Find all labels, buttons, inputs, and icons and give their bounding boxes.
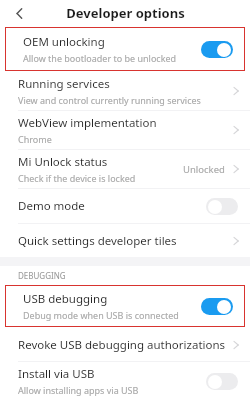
button[interactable]: Toggle off	[206, 373, 238, 390]
staticText: Mi Unlock status	[18, 154, 108, 170]
button[interactable]: USB debugging	[5, 285, 245, 327]
staticText: Developer options	[66, 4, 185, 22]
staticText: Revoke USB debugging authorizations	[18, 337, 226, 353]
button[interactable]: Quick settings developer tiles	[0, 224, 250, 257]
button[interactable]: Revoke USB debugging authorizations	[0, 328, 250, 361]
button[interactable]: Toggle on	[201, 298, 233, 315]
staticText: Check if the device is locked	[18, 172, 136, 184]
button[interactable]: Toggle off	[206, 198, 238, 215]
button[interactable]: WebView implementation	[0, 111, 250, 149]
staticText: Demo mode	[18, 198, 85, 214]
staticText: Running services	[18, 76, 110, 92]
button[interactable]: OEM unlocking	[5, 27, 245, 71]
staticText: Debug mode when USB is connected	[23, 309, 179, 321]
staticText: Install via USB	[18, 366, 95, 382]
button[interactable]: Toggle on	[201, 41, 233, 58]
button[interactable]: Back	[9, 3, 29, 23]
button[interactable]: Running services	[0, 72, 250, 110]
staticText: WebView implementation	[18, 115, 157, 131]
button[interactable]: Demo mode	[0, 189, 250, 223]
button[interactable]: Mi Unlock status	[0, 150, 250, 188]
staticText: Chrome	[18, 133, 52, 145]
staticText: Unlocked	[183, 163, 225, 176]
staticText: USB debugging	[23, 291, 108, 307]
staticText: OEM unlocking	[23, 34, 105, 50]
staticText: Allow the bootloader to be unlocked	[23, 52, 177, 64]
staticText: View and control currently running servi…	[18, 94, 201, 106]
staticText: Allow installing apps via USB	[18, 384, 139, 396]
button[interactable]: Install via USB	[0, 362, 250, 400]
staticText: Quick settings developer tiles	[18, 233, 177, 249]
staticText: DEBUGGING	[18, 270, 66, 281]
